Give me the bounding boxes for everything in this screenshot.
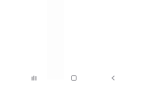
button[interactable]: Charts — [14, 71, 55, 84]
button[interactable]: Back — [95, 71, 136, 84]
button[interactable]: Library — [55, 71, 95, 84]
